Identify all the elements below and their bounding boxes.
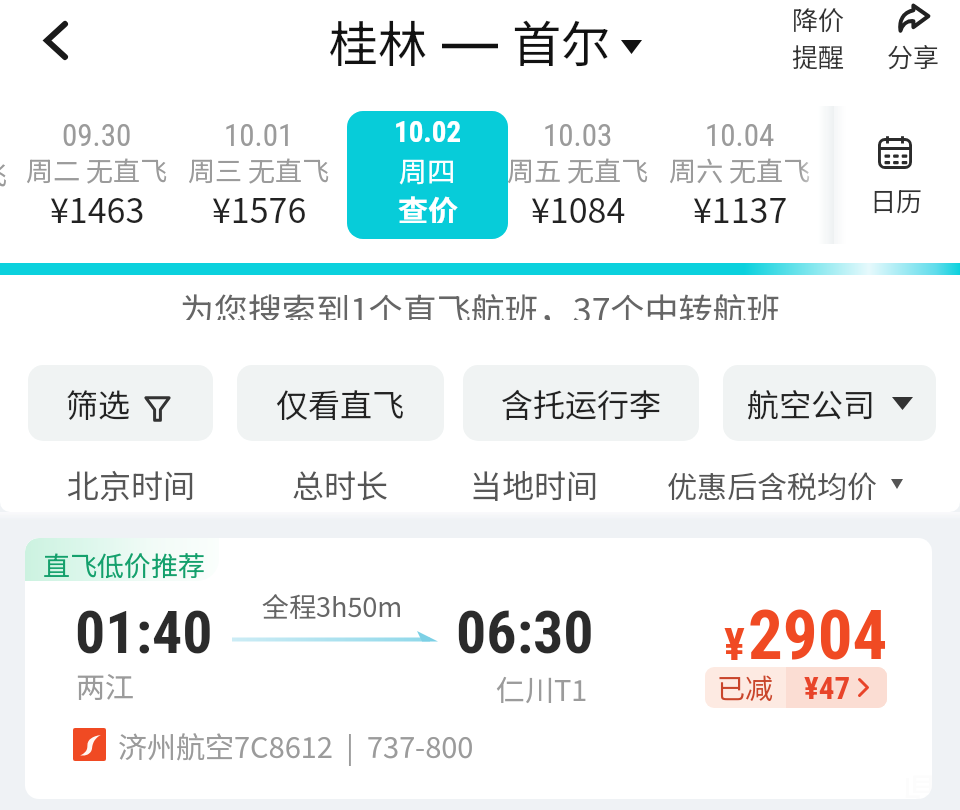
button[interactable]: 仅看直飞 <box>237 365 444 441</box>
button[interactable]: 含托运行李 <box>463 365 699 441</box>
staticText: ¥47 <box>804 670 851 706</box>
staticText: 航空公司 <box>747 380 876 426</box>
staticText: 优惠后含税均价 <box>667 463 877 506</box>
staticText: 直飞低价推荐 <box>43 545 205 581</box>
staticText: 当地时间 <box>470 461 599 507</box>
staticText: 01:40 <box>75 597 213 667</box>
button[interactable]: 分享 <box>879 0 948 74</box>
button[interactable]: 航空公司 <box>723 365 936 441</box>
staticText: 为您搜索到1个直飞航班，37个中转航班 <box>180 284 781 320</box>
staticText: 飞 <box>0 151 8 193</box>
staticText: 降价 <box>792 0 845 38</box>
staticText: 日历 <box>870 181 923 219</box>
staticText: 北京时间 <box>67 461 196 507</box>
button[interactable]: 桂林 <box>329 5 642 73</box>
staticText: ¥1084 <box>531 184 626 224</box>
button[interactable]: 返回 <box>22 6 90 74</box>
button[interactable]: 当地时间 <box>444 458 624 510</box>
staticText: 两江 <box>76 664 135 706</box>
staticText: 10.04 <box>705 117 775 153</box>
staticText: 桂林 <box>329 5 428 73</box>
staticText: 首尔 <box>512 5 611 73</box>
staticText: ¥1576 <box>212 184 307 224</box>
button[interactable]: 日历 <box>836 106 956 244</box>
button[interactable]: 筛选 <box>28 365 213 441</box>
button[interactable]: 10.02 <box>347 111 508 239</box>
button[interactable]: 10.04 <box>655 106 825 244</box>
staticText: 总时长 <box>292 461 389 507</box>
staticText: 09.30 <box>62 117 132 153</box>
button[interactable]: 已减 <box>705 667 887 708</box>
staticText: ¥ <box>724 619 745 671</box>
button[interactable]: 优惠后含税均价 <box>667 458 903 510</box>
staticText: 10.02 <box>394 115 462 149</box>
button[interactable]: 09.30 <box>12 106 182 244</box>
staticText: 提醒 <box>792 37 845 75</box>
staticText: 仁川T1 <box>496 667 588 709</box>
staticText: 周四 <box>399 150 456 186</box>
button[interactable]: 北京时间 <box>41 458 221 510</box>
button[interactable]: 10.03 <box>493 106 663 244</box>
staticText: ¥1137 <box>693 184 788 224</box>
staticText: ¥1463 <box>50 184 145 224</box>
staticText: 全程3h50m <box>262 586 403 625</box>
staticText: 06:30 <box>456 597 594 667</box>
staticText: 周五 无直飞 <box>507 150 649 186</box>
button[interactable]: 10.01 <box>174 106 344 244</box>
staticText: 已减 <box>717 667 774 708</box>
staticText: 筛选 <box>66 380 131 426</box>
staticText: 仅看直飞 <box>276 380 405 426</box>
staticText: 10.01 <box>224 117 294 153</box>
staticText: 查价 <box>398 187 458 223</box>
staticText: 含托运行李 <box>501 380 662 426</box>
button[interactable]: 总时长 <box>250 458 430 510</box>
staticText: 济州航空7C8612 | 737-800 <box>118 724 474 766</box>
staticText: 周六 无直飞 <box>669 150 811 186</box>
staticText: 周三 无直飞 <box>188 150 330 186</box>
button[interactable]: 降价 <box>784 0 853 74</box>
button[interactable]: 直飞低价推荐 <box>25 538 932 799</box>
staticText: 2904 <box>748 595 888 676</box>
staticText: 周二 无直飞 <box>26 150 168 186</box>
staticText: 10.03 <box>543 117 613 153</box>
staticText: 分享 <box>887 37 940 75</box>
